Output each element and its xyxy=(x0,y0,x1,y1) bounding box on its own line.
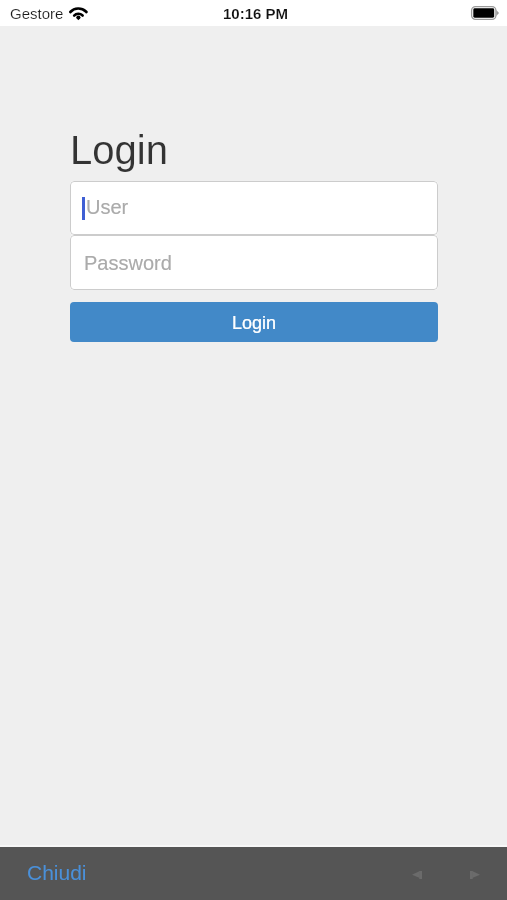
staticText: Login xyxy=(70,128,168,173)
staticText: Password xyxy=(84,252,172,274)
staticText: Login xyxy=(232,313,277,333)
button[interactable]: Chiudi xyxy=(27,846,87,899)
staticText: 10:16 PM xyxy=(223,5,289,22)
button[interactable]: Login xyxy=(70,302,438,342)
staticText: User xyxy=(86,196,129,218)
button[interactable]: User xyxy=(70,181,438,235)
staticText: Chiudi xyxy=(27,861,87,884)
button[interactable]: Password xyxy=(70,235,438,290)
staticText: Gestore xyxy=(10,5,64,22)
